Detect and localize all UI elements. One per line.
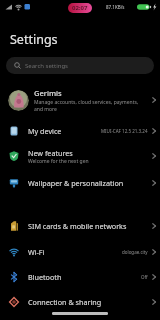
staticText: Off (141, 274, 148, 280)
staticText: My device (28, 126, 62, 136)
button[interactable]: SIM cards & mobile networks (0, 214, 160, 237)
staticText: Connection & sharing (28, 297, 102, 307)
staticText: Search settings (25, 62, 68, 70)
staticText: 02:07 (72, 4, 88, 12)
staticText: Wallpaper & personalization (28, 178, 124, 188)
staticText: Settings (10, 31, 58, 48)
staticText: MIUI-CAF 12.5 21.3.24 (101, 128, 148, 134)
staticText: dologae.city (122, 249, 148, 255)
staticText: Welcome for the next gen (28, 158, 89, 165)
button[interactable]: Connection & sharing (0, 290, 160, 313)
button[interactable]: Gerimis (0, 84, 160, 116)
button[interactable]: Bluetooth (0, 265, 160, 288)
staticText: Wi-Fi (28, 247, 45, 257)
button[interactable]: New features (0, 144, 160, 168)
button[interactable]: Wi-Fi (0, 240, 160, 263)
staticText: 87.1KB/s (106, 4, 125, 10)
button[interactable]: My device (0, 120, 160, 142)
staticText: Bluetooth (28, 272, 62, 282)
button[interactable]: Search settings (6, 57, 154, 74)
button[interactable]: Wallpaper & personalization (0, 172, 160, 194)
staticText: SIM cards & mobile networks (28, 221, 127, 231)
staticText: New features (28, 148, 73, 158)
staticText: Manage accounts, cloud services, payment… (34, 99, 139, 113)
staticText: Gerimis (34, 88, 62, 98)
